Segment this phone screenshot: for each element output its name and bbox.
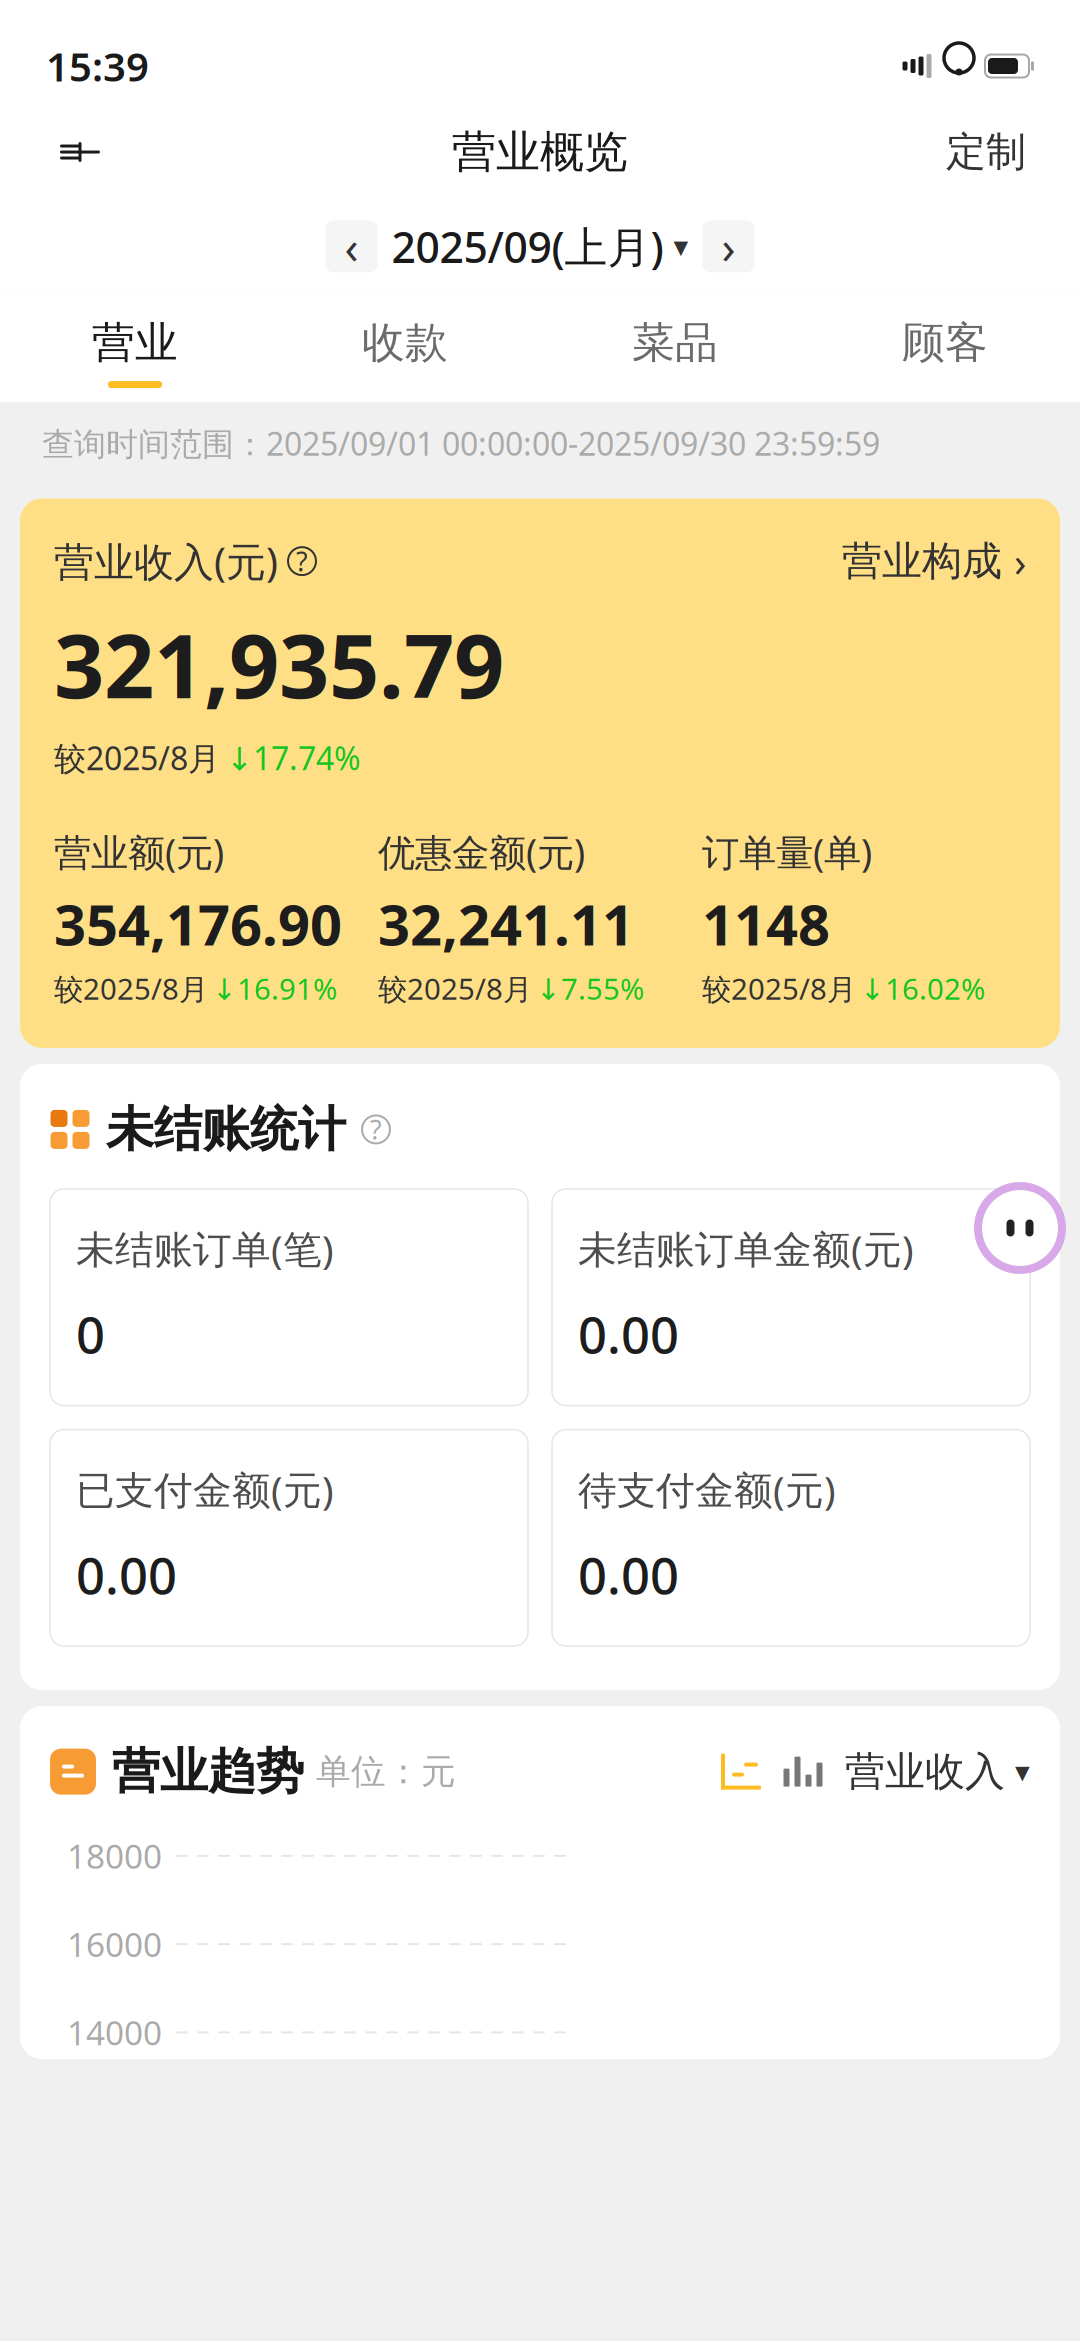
staticText: 18000 <box>67 1834 162 1878</box>
staticText: 收款 <box>362 317 448 369</box>
staticText: 定制 <box>946 127 1026 176</box>
staticText: 较2025/8月 <box>702 969 856 1008</box>
staticText: 32,241.11 <box>378 887 634 961</box>
staticText: 15:39 <box>46 39 149 92</box>
staticText: 营业额(元) <box>54 827 224 877</box>
button[interactable]: 顾客 <box>810 303 1080 402</box>
staticText: ▾ <box>1015 1755 1030 1788</box>
staticText: ? <box>296 543 308 579</box>
button[interactable]: 返回 <box>40 115 120 189</box>
staticText: 营业 <box>92 317 178 369</box>
staticText: 354,176.90 <box>54 887 342 961</box>
button[interactable]: 营业收入 <box>845 1747 1030 1796</box>
staticText: 2025/09(上月) <box>391 218 663 275</box>
button[interactable]: 智能助手 <box>972 1180 1068 1276</box>
button[interactable]: 未结账订单(笔) <box>50 1189 528 1405</box>
staticText: 较2025/8月 <box>54 736 220 779</box>
staticText: 321,935.79 <box>54 606 504 723</box>
staticText: ‹ <box>344 216 358 276</box>
staticText: 未结账订单(笔) <box>76 1223 334 1274</box>
staticText: ↓7.55% <box>536 969 644 1008</box>
staticText: 已支付金额(元) <box>76 1463 334 1515</box>
staticText: ? <box>370 1112 382 1147</box>
staticText: 待支付金额(元) <box>578 1463 836 1515</box>
button[interactable]: 柱状图 <box>777 1748 829 1796</box>
staticText: 14000 <box>67 2010 162 2054</box>
staticText: › <box>721 216 735 276</box>
button[interactable]: 2025/09(上月) <box>391 218 688 275</box>
button[interactable]: 营业 <box>0 303 270 402</box>
staticText: 0.00 <box>578 1541 679 1608</box>
staticText: 营业收入(元) <box>54 535 278 588</box>
button[interactable]: 待支付金额(元) <box>552 1429 1030 1646</box>
staticText: 0 <box>76 1300 105 1367</box>
button[interactable]: 营业构成 <box>842 535 1026 588</box>
staticText: 优惠金额(元) <box>378 827 585 877</box>
button[interactable]: 已支付金额(元) <box>50 1429 528 1646</box>
staticText: 营业趋势 <box>112 1742 304 1801</box>
button[interactable]: 上一月 <box>325 220 377 272</box>
staticText: ↓17.74% <box>226 736 361 779</box>
staticText: 未结账订单金额(元) <box>578 1223 914 1274</box>
button[interactable]: 未结账订单金额(元) <box>552 1189 1030 1405</box>
staticText: ▾ <box>673 230 688 263</box>
staticText: 单位：元 <box>316 1750 456 1793</box>
staticText: 0.00 <box>578 1300 679 1367</box>
staticText: 较2025/8月 <box>54 969 208 1008</box>
staticText: 营业概览 <box>452 125 628 179</box>
staticText: 顾客 <box>902 317 988 369</box>
staticText: 菜品 <box>632 317 718 369</box>
button[interactable]: 收款 <box>270 303 540 402</box>
button[interactable]: 折线图 <box>715 1748 767 1796</box>
button[interactable]: 定制 <box>932 115 1040 189</box>
staticText: 0.00 <box>76 1541 177 1608</box>
staticText: 较2025/8月 <box>378 969 532 1008</box>
staticText: ↓16.91% <box>212 969 337 1008</box>
button[interactable]: 下一月 <box>702 220 754 272</box>
staticText: 查询时间范围：2025/09/01 00:00:00-2025/09/30 23… <box>42 422 880 465</box>
staticText: 未结账统计 <box>106 1100 346 1159</box>
staticText: 1148 <box>702 887 830 961</box>
staticText: 16000 <box>67 1922 162 1966</box>
staticText: 订单量(单) <box>702 827 872 877</box>
staticText: 营业构成 <box>842 537 1002 586</box>
staticText: 营业收入 <box>845 1747 1005 1796</box>
button[interactable]: 菜品 <box>540 303 810 402</box>
staticText: › <box>1014 535 1026 588</box>
staticText: ↓16.02% <box>860 969 985 1008</box>
